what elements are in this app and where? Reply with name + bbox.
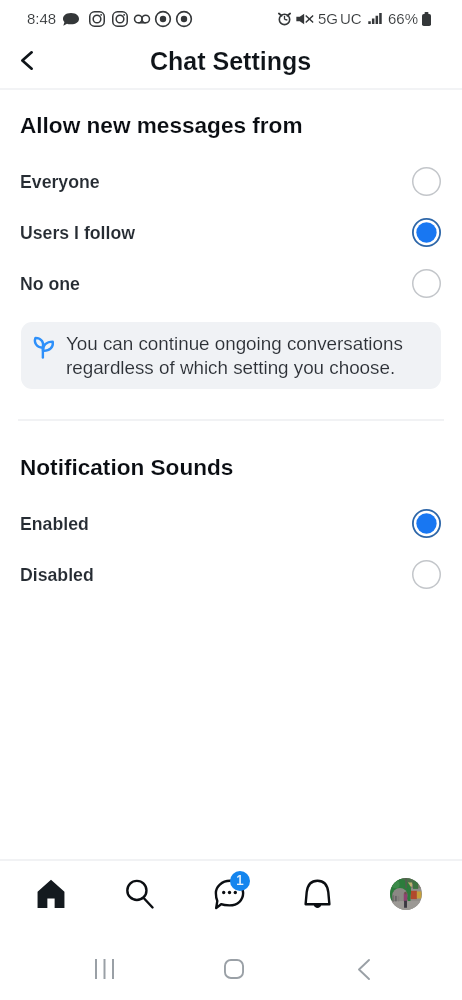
- staticText: Disabled: [20, 565, 94, 585]
- button[interactable]: Everyone: [0, 156, 462, 207]
- button[interactable]: Disabled: [0, 549, 462, 600]
- button[interactable]: Notifications: [288, 861, 346, 926]
- staticText: Chat Settings: [150, 47, 312, 75]
- button[interactable]: Messages: [203, 861, 261, 926]
- button[interactable]: Search: [110, 861, 168, 926]
- staticText: 8:48: [27, 10, 57, 27]
- staticText: 66%: [388, 10, 419, 27]
- staticText: Everyone: [20, 172, 100, 192]
- staticText: 5G: [318, 10, 339, 27]
- button[interactable]: Back: [334, 954, 394, 984]
- button[interactable]: Recent apps: [74, 954, 134, 984]
- staticText: Allow new messages from: [20, 113, 303, 138]
- staticText: Enabled: [20, 514, 89, 534]
- staticText: 1: [236, 872, 244, 888]
- staticText: Users I follow: [20, 223, 135, 243]
- button[interactable]: Enabled: [0, 498, 462, 549]
- staticText: UC: [340, 10, 362, 27]
- button[interactable]: Users I follow: [0, 207, 462, 258]
- staticText: No one: [20, 274, 80, 294]
- button[interactable]: Home: [204, 954, 264, 984]
- staticText: You can continue ongoing conversations r…: [66, 333, 429, 378]
- button[interactable]: Back: [4, 40, 48, 84]
- button[interactable]: Home: [22, 861, 80, 926]
- button[interactable]: Profile: [377, 861, 435, 926]
- staticText: Notification Sounds: [20, 455, 234, 480]
- button[interactable]: No one: [0, 258, 462, 309]
